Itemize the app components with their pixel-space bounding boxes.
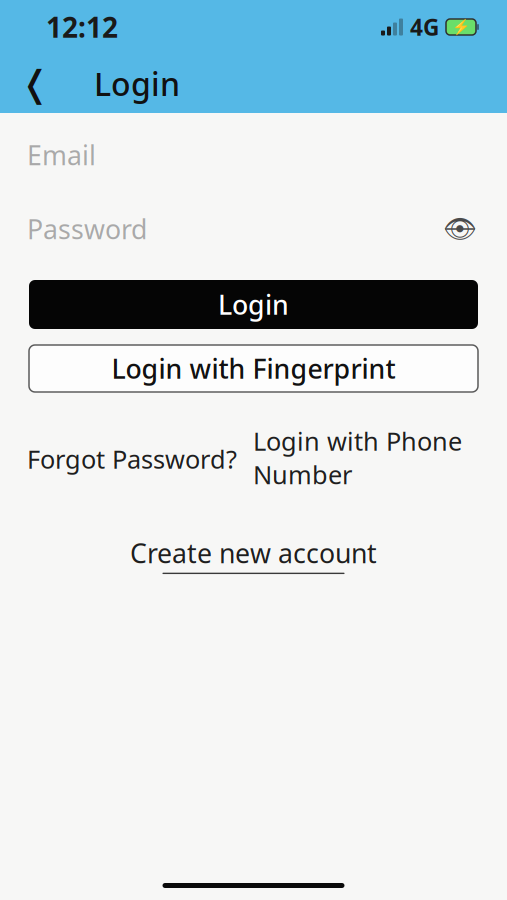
staticText: 4G [410,12,439,42]
button[interactable]: Login [29,280,478,329]
button[interactable]: Login with Fingerprint [29,345,478,392]
staticText: Forgot Password? [27,442,237,476]
button[interactable]: Login with Phone Number [253,424,487,491]
staticText: 👁 [443,214,477,244]
staticText: ⚡ [452,19,470,35]
staticText: Create new account [130,535,377,571]
staticText: Login [94,62,180,105]
staticText: 12:12 [46,8,118,46]
button[interactable]: Create new account [130,535,377,574]
button[interactable]: Forgot Password? [27,424,253,476]
button[interactable]: Show password [440,211,480,247]
staticText: Login with Fingerprint [111,351,395,386]
staticText: Password [27,211,147,247]
staticText: Email [27,137,96,173]
staticText: Login with Phone Number [253,424,462,491]
staticText: ❬ [20,63,50,104]
staticText: Login [218,287,289,322]
button[interactable]: Back [12,58,58,108]
